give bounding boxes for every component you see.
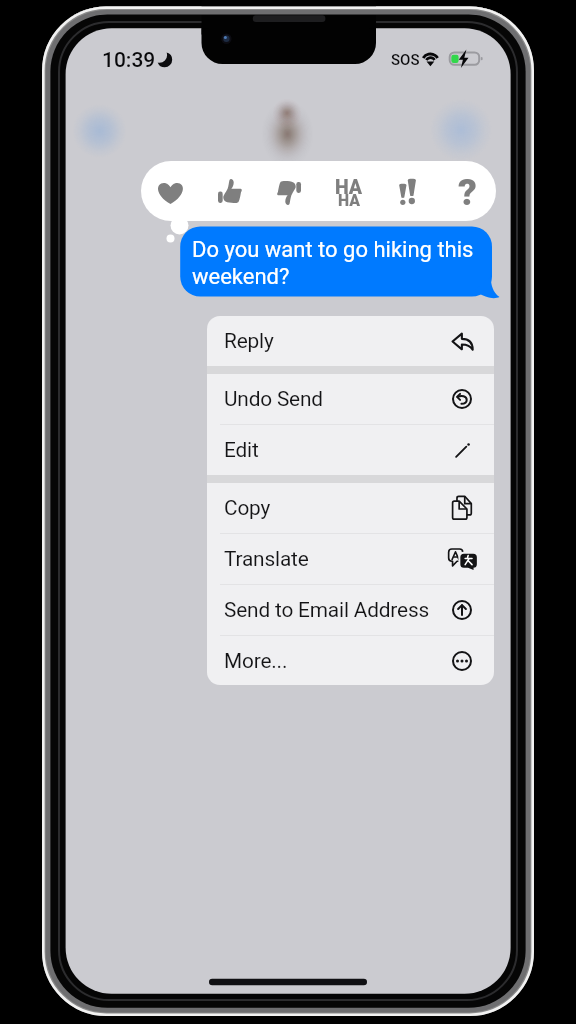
button[interactable]: Reply <box>207 316 494 366</box>
staticText: HA <box>338 191 360 210</box>
staticText: Send to Email Address <box>224 598 430 622</box>
button[interactable]: Translate <box>207 534 494 584</box>
staticText: Undo Send <box>224 387 323 411</box>
button[interactable]: Thumbs up <box>200 161 259 221</box>
button[interactable]: More... <box>207 636 494 685</box>
button[interactable]: Love <box>141 161 200 221</box>
staticText: Reply <box>224 329 274 353</box>
button[interactable]: Haha <box>318 161 377 221</box>
staticText: Edit <box>224 438 259 462</box>
staticText: Translate <box>224 547 309 571</box>
staticText: Do you want to go hiking this weekend? <box>192 237 474 289</box>
staticText: Copy <box>224 496 271 520</box>
button[interactable]: Edit <box>207 425 494 475</box>
staticText: HA <box>335 176 363 199</box>
button[interactable]: Copy <box>207 483 494 533</box>
button[interactable]: Question <box>436 161 495 221</box>
staticText: More... <box>224 649 288 673</box>
staticText: ? <box>458 171 477 214</box>
button[interactable]: Thumbs down <box>259 161 318 221</box>
button[interactable]: Undo Send <box>207 374 494 424</box>
staticText: SOS <box>391 51 420 69</box>
button[interactable]: Exclamation <box>377 161 436 221</box>
staticText: 10:39 <box>102 48 156 73</box>
button[interactable]: Send to Email Address <box>207 585 494 635</box>
